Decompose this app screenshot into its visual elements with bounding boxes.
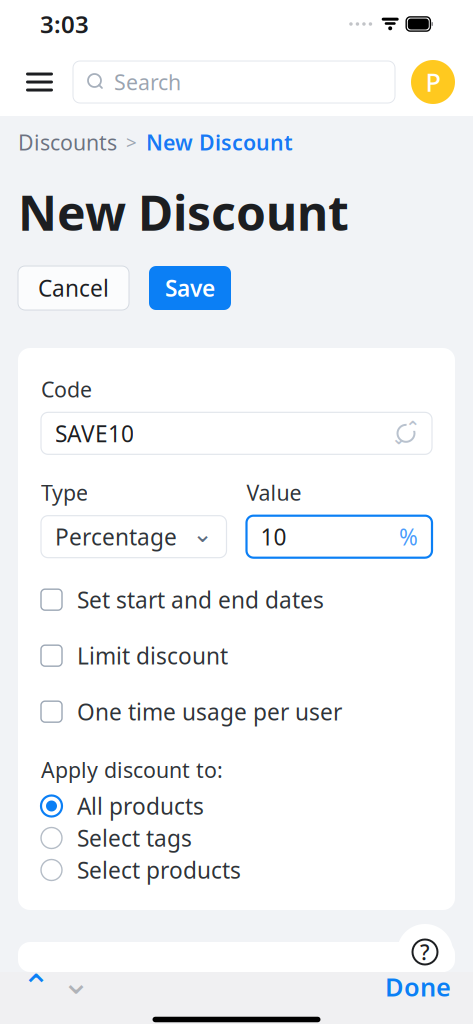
button[interactable]: Previous field [16, 969, 56, 1005]
button[interactable]: One time usage per user [41, 692, 432, 732]
button[interactable]: Help [397, 924, 453, 980]
button[interactable]: Limit discount [41, 636, 432, 676]
staticText: Select products [77, 855, 241, 885]
button[interactable]: Done [379, 970, 457, 1003]
staticText: ⌄ [61, 962, 90, 1001]
staticText: Select tags [77, 823, 192, 853]
staticText: Done [385, 970, 451, 1003]
staticText: Type [41, 478, 88, 507]
button[interactable]: Next field [56, 969, 96, 1005]
staticText: Apply discount to: [41, 756, 223, 784]
staticText: Cancel [38, 273, 109, 303]
staticText: Value [246, 478, 301, 507]
staticText: SAVE10 [55, 418, 134, 448]
button[interactable]: Percentage [41, 516, 226, 558]
button[interactable]: New Discount [146, 128, 293, 156]
button[interactable]: All products [41, 790, 432, 822]
button[interactable]: Account [411, 60, 455, 104]
button[interactable]: Select tags [41, 822, 432, 854]
button[interactable]: Save [149, 266, 231, 310]
staticText: Percentage [55, 522, 177, 552]
staticText: % [399, 522, 418, 552]
button[interactable]: Cancel [18, 266, 129, 310]
staticText: New Discount [146, 128, 293, 156]
staticText: Discounts [18, 128, 117, 156]
staticText: Save [165, 273, 215, 303]
staticText: > [126, 130, 137, 154]
button[interactable]: 10 [246, 516, 432, 558]
button[interactable]: Menu [18, 60, 61, 103]
staticText: Limit discount [77, 641, 228, 671]
staticText: All products [77, 791, 204, 821]
staticText: ? [420, 938, 430, 966]
staticText: ⌃ [21, 967, 50, 1006]
staticText: One time usage per user [77, 697, 342, 727]
staticText: P [425, 65, 440, 99]
button[interactable]: Set start and end dates [41, 580, 432, 620]
button[interactable]: Discounts [18, 128, 117, 156]
staticText: Set start and end dates [77, 585, 324, 615]
button[interactable]: Search [73, 61, 395, 103]
staticText: ⌄ [192, 520, 212, 547]
button[interactable]: SAVE10 [41, 412, 432, 454]
staticText: Code [41, 375, 92, 403]
staticText: 3:03 [40, 8, 89, 40]
button[interactable]: Select products [41, 854, 432, 886]
staticText: 10 [260, 522, 286, 552]
staticText: New Discount [18, 180, 349, 244]
staticText: ⌄ [391, 428, 406, 448]
staticText: Search [114, 68, 181, 96]
staticText: ⌃ [405, 417, 420, 437]
